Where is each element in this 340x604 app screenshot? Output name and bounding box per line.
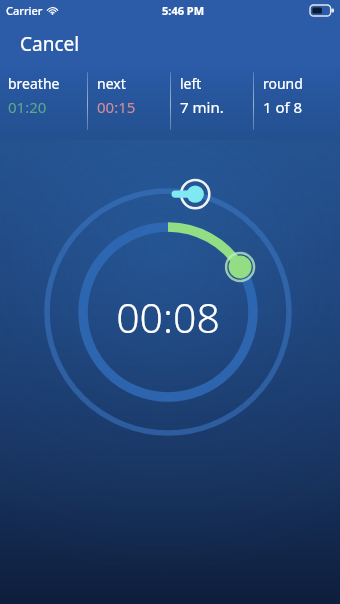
staticText: 00:15: [97, 97, 136, 117]
staticText: Cancel: [20, 31, 80, 57]
staticText: breathe: [8, 74, 60, 93]
button[interactable]: round: [253, 68, 340, 140]
staticText: 7 min.: [180, 97, 224, 117]
staticText: 00:08: [0, 289, 338, 345]
staticText: next: [97, 74, 126, 93]
button[interactable]: next: [87, 68, 170, 140]
staticText: 5:46 PM: [162, 3, 205, 18]
button[interactable]: left: [170, 68, 253, 140]
staticText: Carrier: [6, 3, 43, 18]
staticText: 01:20: [8, 97, 47, 117]
button[interactable]: breathe: [0, 68, 87, 140]
staticText: 1 of 8: [263, 97, 303, 117]
button[interactable]: Cancel: [10, 25, 90, 63]
staticText: round: [263, 74, 303, 93]
button[interactable]: Breathing timer, 00:08 remaining: [0, 158, 340, 458]
staticText: left: [180, 74, 202, 93]
